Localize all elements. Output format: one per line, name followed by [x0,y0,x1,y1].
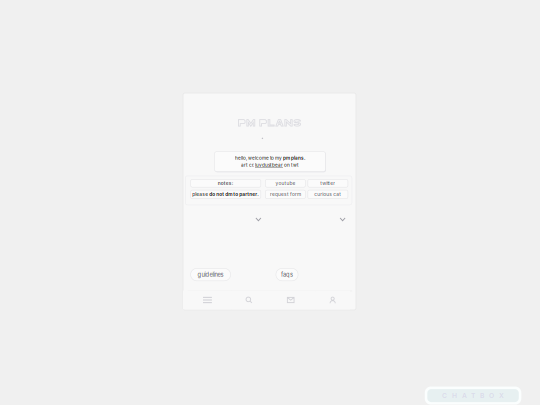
staticText: youtube [275,180,295,186]
staticText: curious cat [314,191,341,197]
button[interactable]: Expand notes [252,214,264,224]
button[interactable]: twitter [308,179,348,187]
staticText: request form [270,191,301,197]
staticText: please do not dm to partner. [192,191,259,197]
staticText: art cr. luvdustbear on twt [241,162,299,168]
button[interactable]: request form [265,190,305,199]
staticText: hello, welcome to my pm plans. [235,155,305,161]
button[interactable]: CHATBOX [425,387,521,405]
button[interactable]: Mail [266,291,315,309]
button[interactable]: guidelines [191,268,231,281]
button[interactable]: faqs [276,268,298,281]
staticText: faqs [281,271,293,278]
staticText: notes: [218,180,234,186]
button[interactable]: youtube [265,179,305,187]
button[interactable]: Menu [183,291,232,309]
button[interactable]: please do not dm to partner. [191,190,261,199]
button[interactable]: Profile [315,291,350,309]
button[interactable]: Expand links [337,214,349,224]
button[interactable]: Search [232,291,266,309]
staticText: guidelines [198,271,224,278]
button[interactable]: notes: [191,179,261,187]
staticText: twitter [320,180,335,186]
button[interactable]: curious cat [308,190,348,199]
staticText: CHATBOX [442,392,504,400]
